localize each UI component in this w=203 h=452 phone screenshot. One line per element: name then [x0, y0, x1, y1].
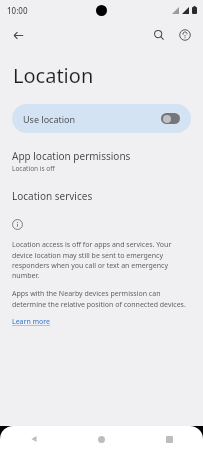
button[interactable]: Learn more	[12, 316, 51, 328]
staticText: 10:00	[7, 5, 28, 16]
staticText: Location	[13, 62, 94, 89]
button[interactable]: App location permissions	[0, 147, 203, 175]
button[interactable]: Recent apps	[135, 426, 203, 452]
button[interactable]	[161, 113, 180, 124]
staticText: App location permissions	[12, 149, 131, 163]
staticText: Apps with the Nearby devices permission …	[12, 289, 189, 309]
staticText: Location access is off for apps and serv…	[12, 240, 189, 280]
button[interactable]: Back	[5, 22, 31, 48]
staticText: Use location	[23, 113, 76, 125]
button[interactable]: Home	[67, 426, 135, 452]
button[interactable]: Help	[172, 22, 198, 48]
staticText: Learn more	[12, 317, 51, 327]
staticText: Location services	[12, 189, 93, 203]
staticText: Location is off	[12, 164, 55, 173]
button[interactable]: Location services	[0, 187, 203, 205]
button[interactable]: Search	[146, 22, 172, 48]
button[interactable]: Back	[0, 426, 67, 452]
button[interactable]: Use location	[12, 104, 191, 133]
